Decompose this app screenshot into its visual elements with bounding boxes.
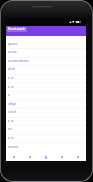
button[interactable]: act xyxy=(6,125,86,134)
button[interactable]: a. m. xyxy=(6,134,86,143)
button[interactable]: o'clock xyxy=(6,108,86,117)
staticText: abide xyxy=(8,67,16,71)
button[interactable]: a xyxy=(6,91,86,100)
button[interactable]: Search xyxy=(6,151,22,161)
staticText: account xyxy=(8,145,19,149)
button[interactable]: oblige xyxy=(6,100,86,109)
staticText: a xyxy=(8,93,10,97)
staticText: o'clock xyxy=(8,110,17,114)
staticText: a. m. xyxy=(8,136,15,140)
staticText: oblige xyxy=(8,102,16,106)
button[interactable]: against xyxy=(6,40,86,49)
staticText: Recent search xyxy=(8,27,26,31)
button[interactable]: Recent search xyxy=(7,27,27,32)
button[interactable]: a. m. xyxy=(6,83,86,92)
button[interactable]: a. m. xyxy=(6,74,86,83)
staticText: a. m. xyxy=(8,76,15,80)
button[interactable]: Account xyxy=(38,151,54,161)
button[interactable]: account xyxy=(6,143,86,152)
button[interactable]: Settings xyxy=(70,151,86,161)
button[interactable]: accommodation xyxy=(6,57,86,66)
staticText: a. m. xyxy=(8,119,15,123)
staticText: against xyxy=(8,42,18,46)
staticText: a. m. xyxy=(8,85,15,89)
button[interactable]: Favorites xyxy=(22,151,38,161)
button[interactable]: accept xyxy=(6,48,86,57)
staticText: accept xyxy=(8,50,17,54)
staticText: accommodation xyxy=(8,59,29,63)
staticText: act xyxy=(8,127,12,131)
button[interactable]: History xyxy=(54,151,70,161)
button[interactable]: abide xyxy=(6,65,86,74)
button[interactable]: a. m. xyxy=(6,117,86,126)
